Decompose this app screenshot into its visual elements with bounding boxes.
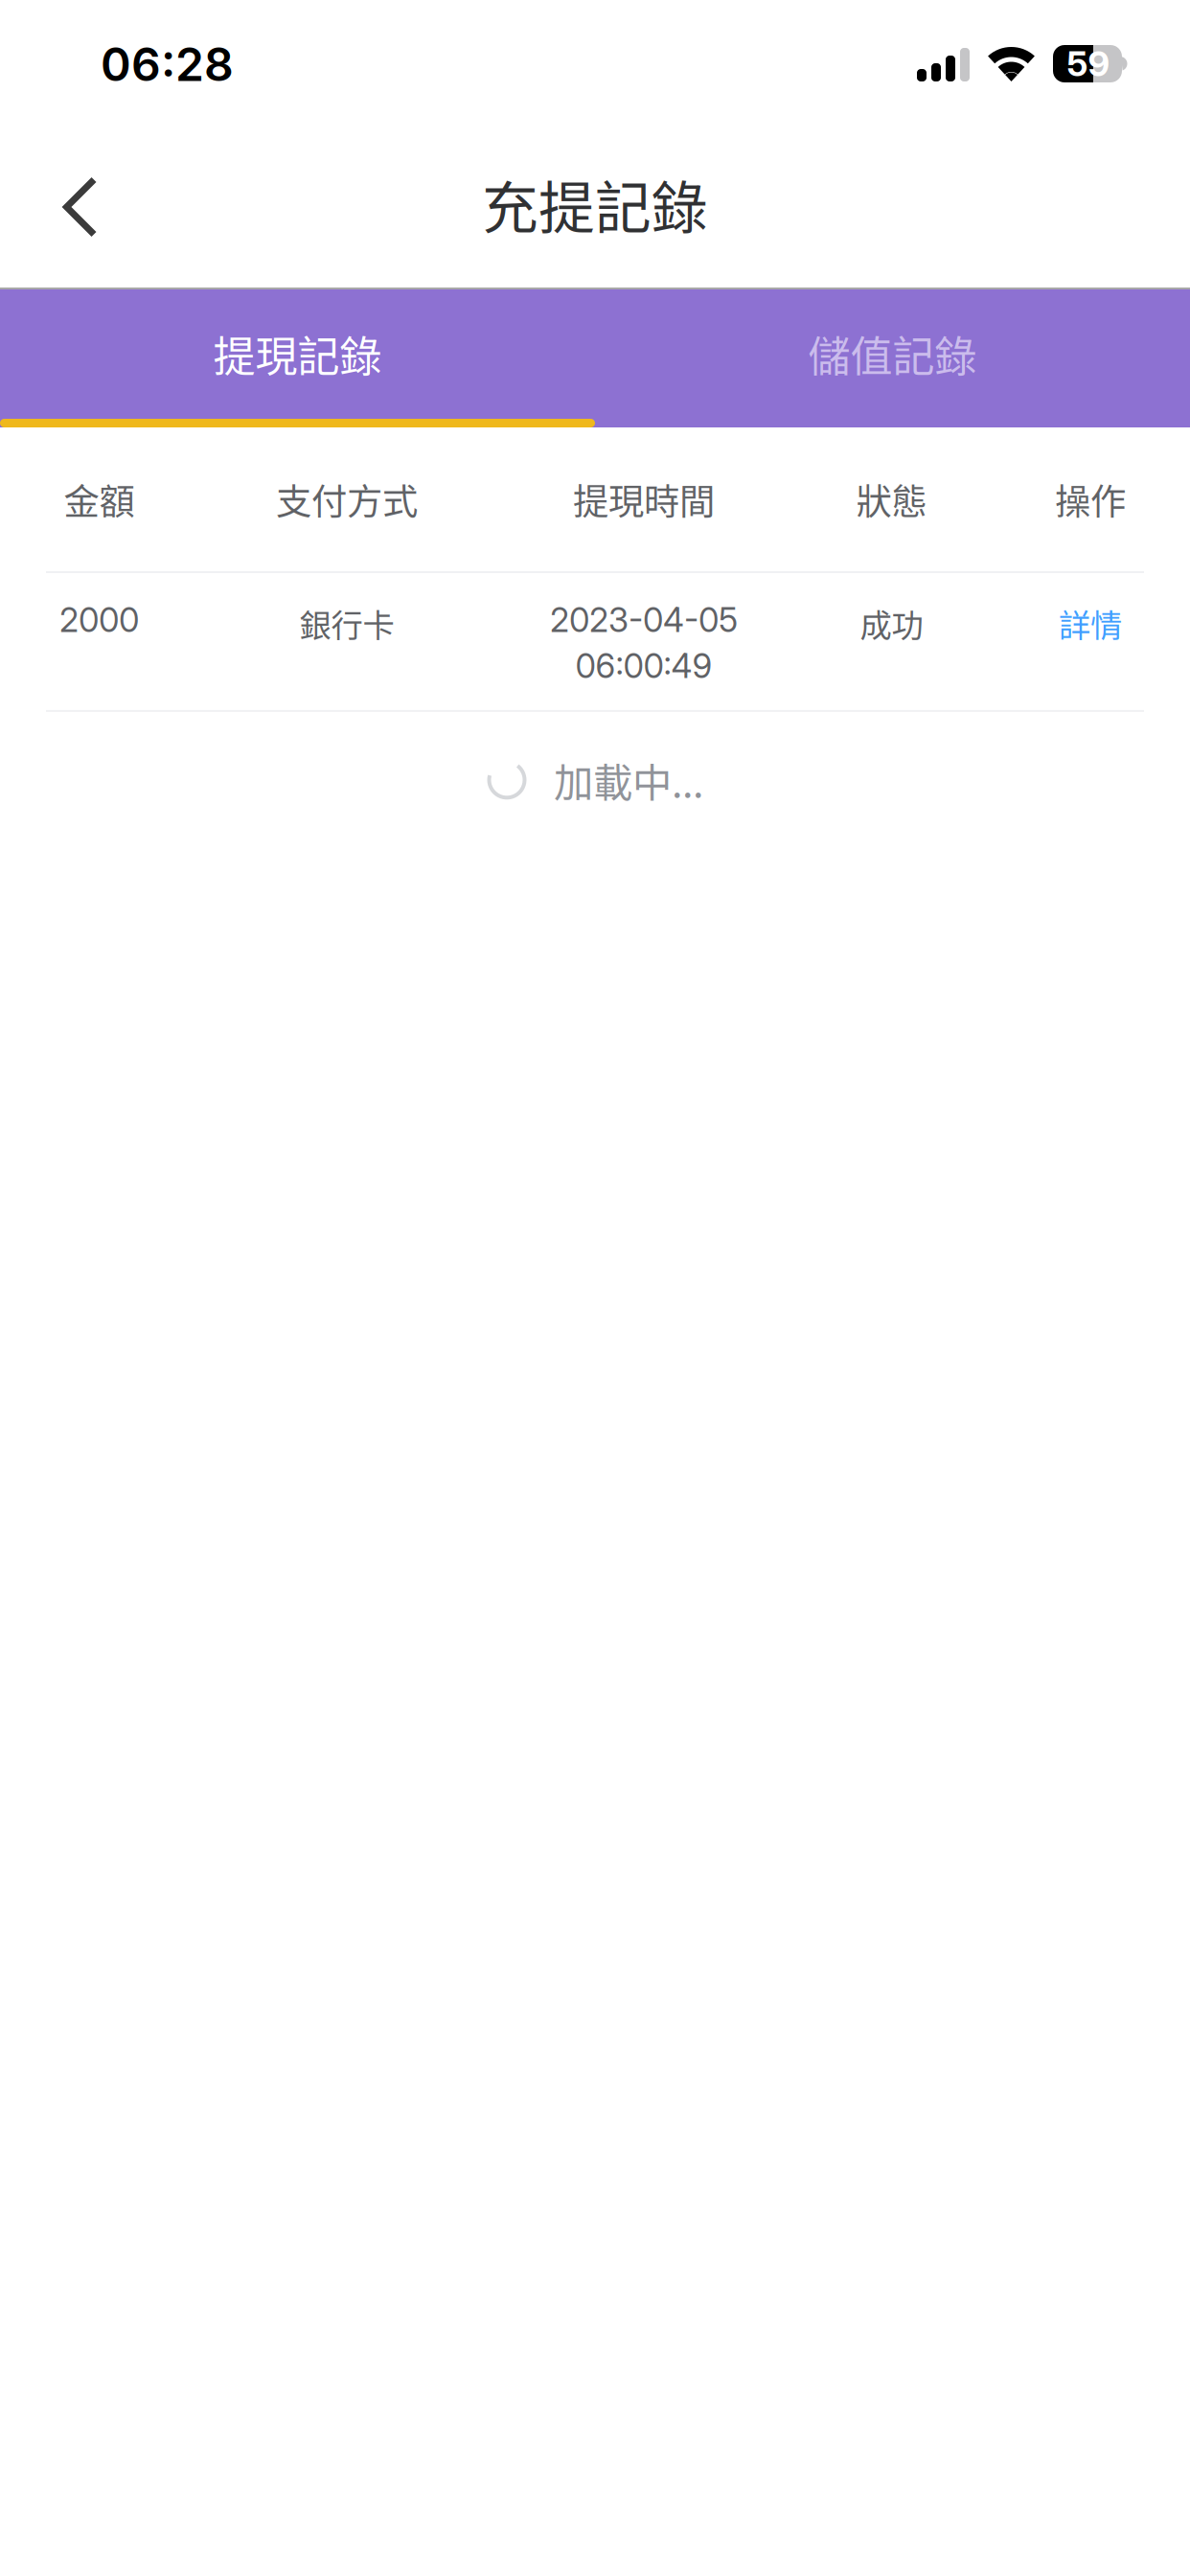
staticText: 2023-04-05 bbox=[550, 600, 738, 640]
button[interactable]: 詳情 bbox=[1037, 600, 1144, 646]
staticText: 儲值記錄 bbox=[808, 323, 977, 384]
staticText: 提現時間 bbox=[573, 473, 715, 525]
staticText: 充提記錄 bbox=[482, 163, 708, 245]
staticText: 加載中... bbox=[554, 751, 703, 809]
staticText: 狀態 bbox=[856, 473, 927, 525]
staticText: 提現記錄 bbox=[213, 323, 382, 384]
staticText: 成功 bbox=[860, 600, 923, 646]
staticText: 支付方式 bbox=[276, 473, 418, 525]
staticText: 操作 bbox=[1055, 473, 1126, 525]
staticText: 06:00:49 bbox=[575, 646, 712, 686]
button[interactable]: 提現記錄 bbox=[0, 289, 595, 427]
staticText: 59 bbox=[1067, 43, 1110, 85]
staticText: 銀行卡 bbox=[299, 600, 394, 646]
button[interactable]: 儲值記錄 bbox=[595, 289, 1190, 427]
staticText: 06:28 bbox=[101, 36, 234, 92]
staticText: 2000 bbox=[59, 600, 139, 640]
staticText: 詳情 bbox=[1059, 600, 1122, 646]
button[interactable]: Back bbox=[0, 146, 144, 268]
staticText: 金額 bbox=[64, 473, 135, 525]
